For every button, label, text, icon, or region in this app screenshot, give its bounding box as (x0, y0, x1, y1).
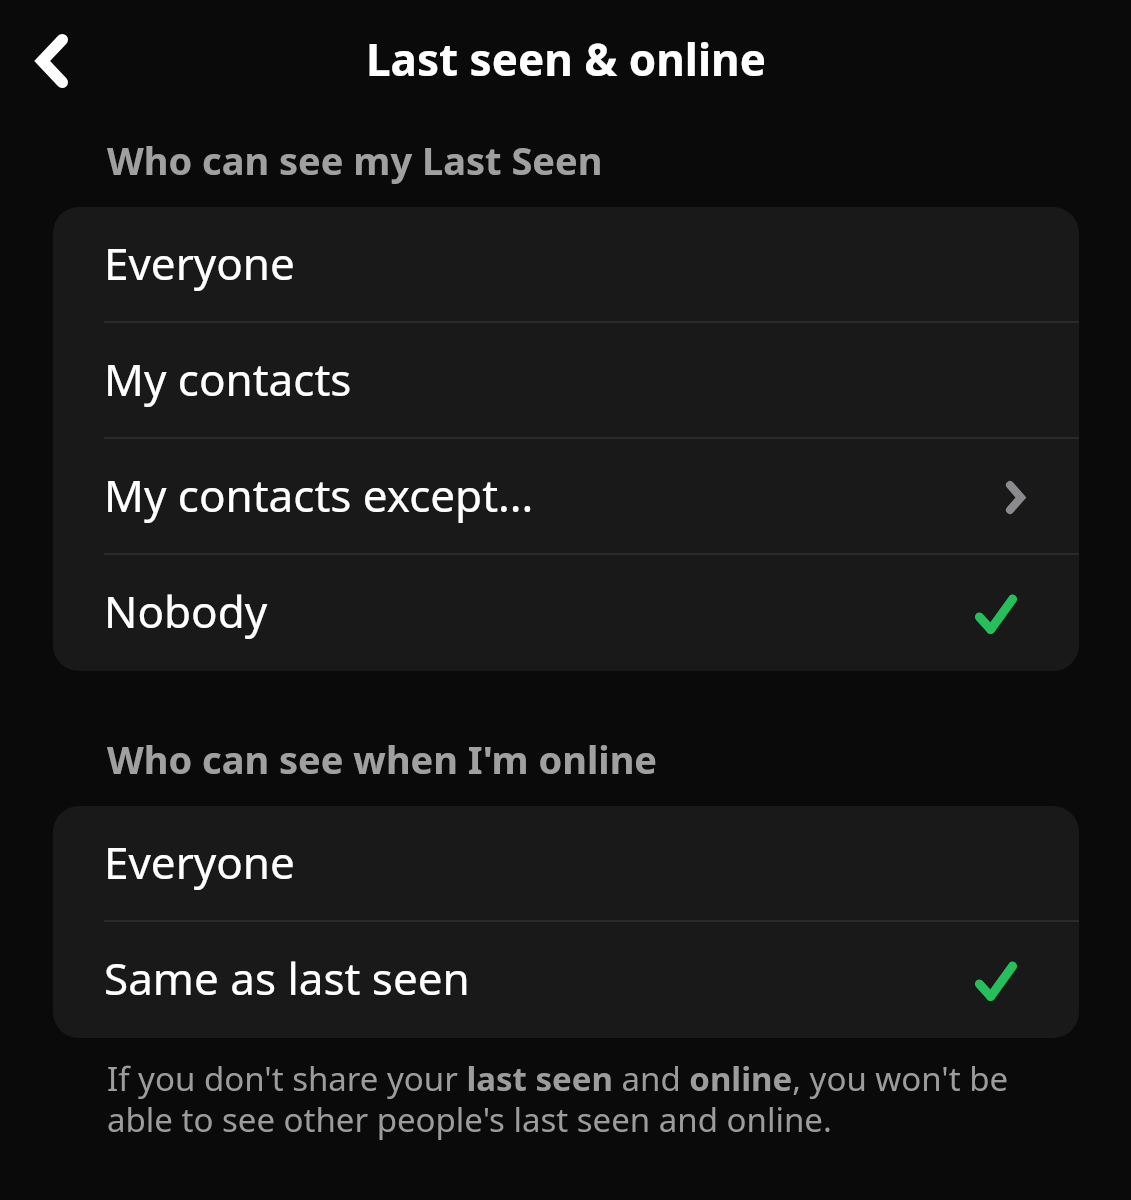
staticText: Who can see when I'm online (107, 733, 658, 785)
staticText: Last seen & online (366, 29, 766, 89)
button[interactable]: Everyone (53, 806, 1079, 922)
button[interactable]: Back (4, 11, 98, 105)
staticText: Everyone (104, 233, 295, 293)
staticText: Everyone (104, 832, 295, 892)
staticText: If you don't share your last seen and on… (107, 1056, 1049, 1142)
button[interactable]: My contacts except... (53, 439, 1079, 555)
staticText: My contacts except... (104, 465, 534, 525)
button[interactable]: My contacts (53, 323, 1079, 439)
staticText: Who can see my Last Seen (107, 134, 603, 186)
staticText: My contacts (104, 349, 352, 409)
button[interactable]: Everyone (53, 207, 1079, 323)
button[interactable]: Nobody (53, 555, 1079, 671)
staticText: Nobody (104, 581, 268, 641)
staticText: Same as last seen (104, 948, 470, 1008)
button[interactable]: Same as last seen (53, 922, 1079, 1038)
